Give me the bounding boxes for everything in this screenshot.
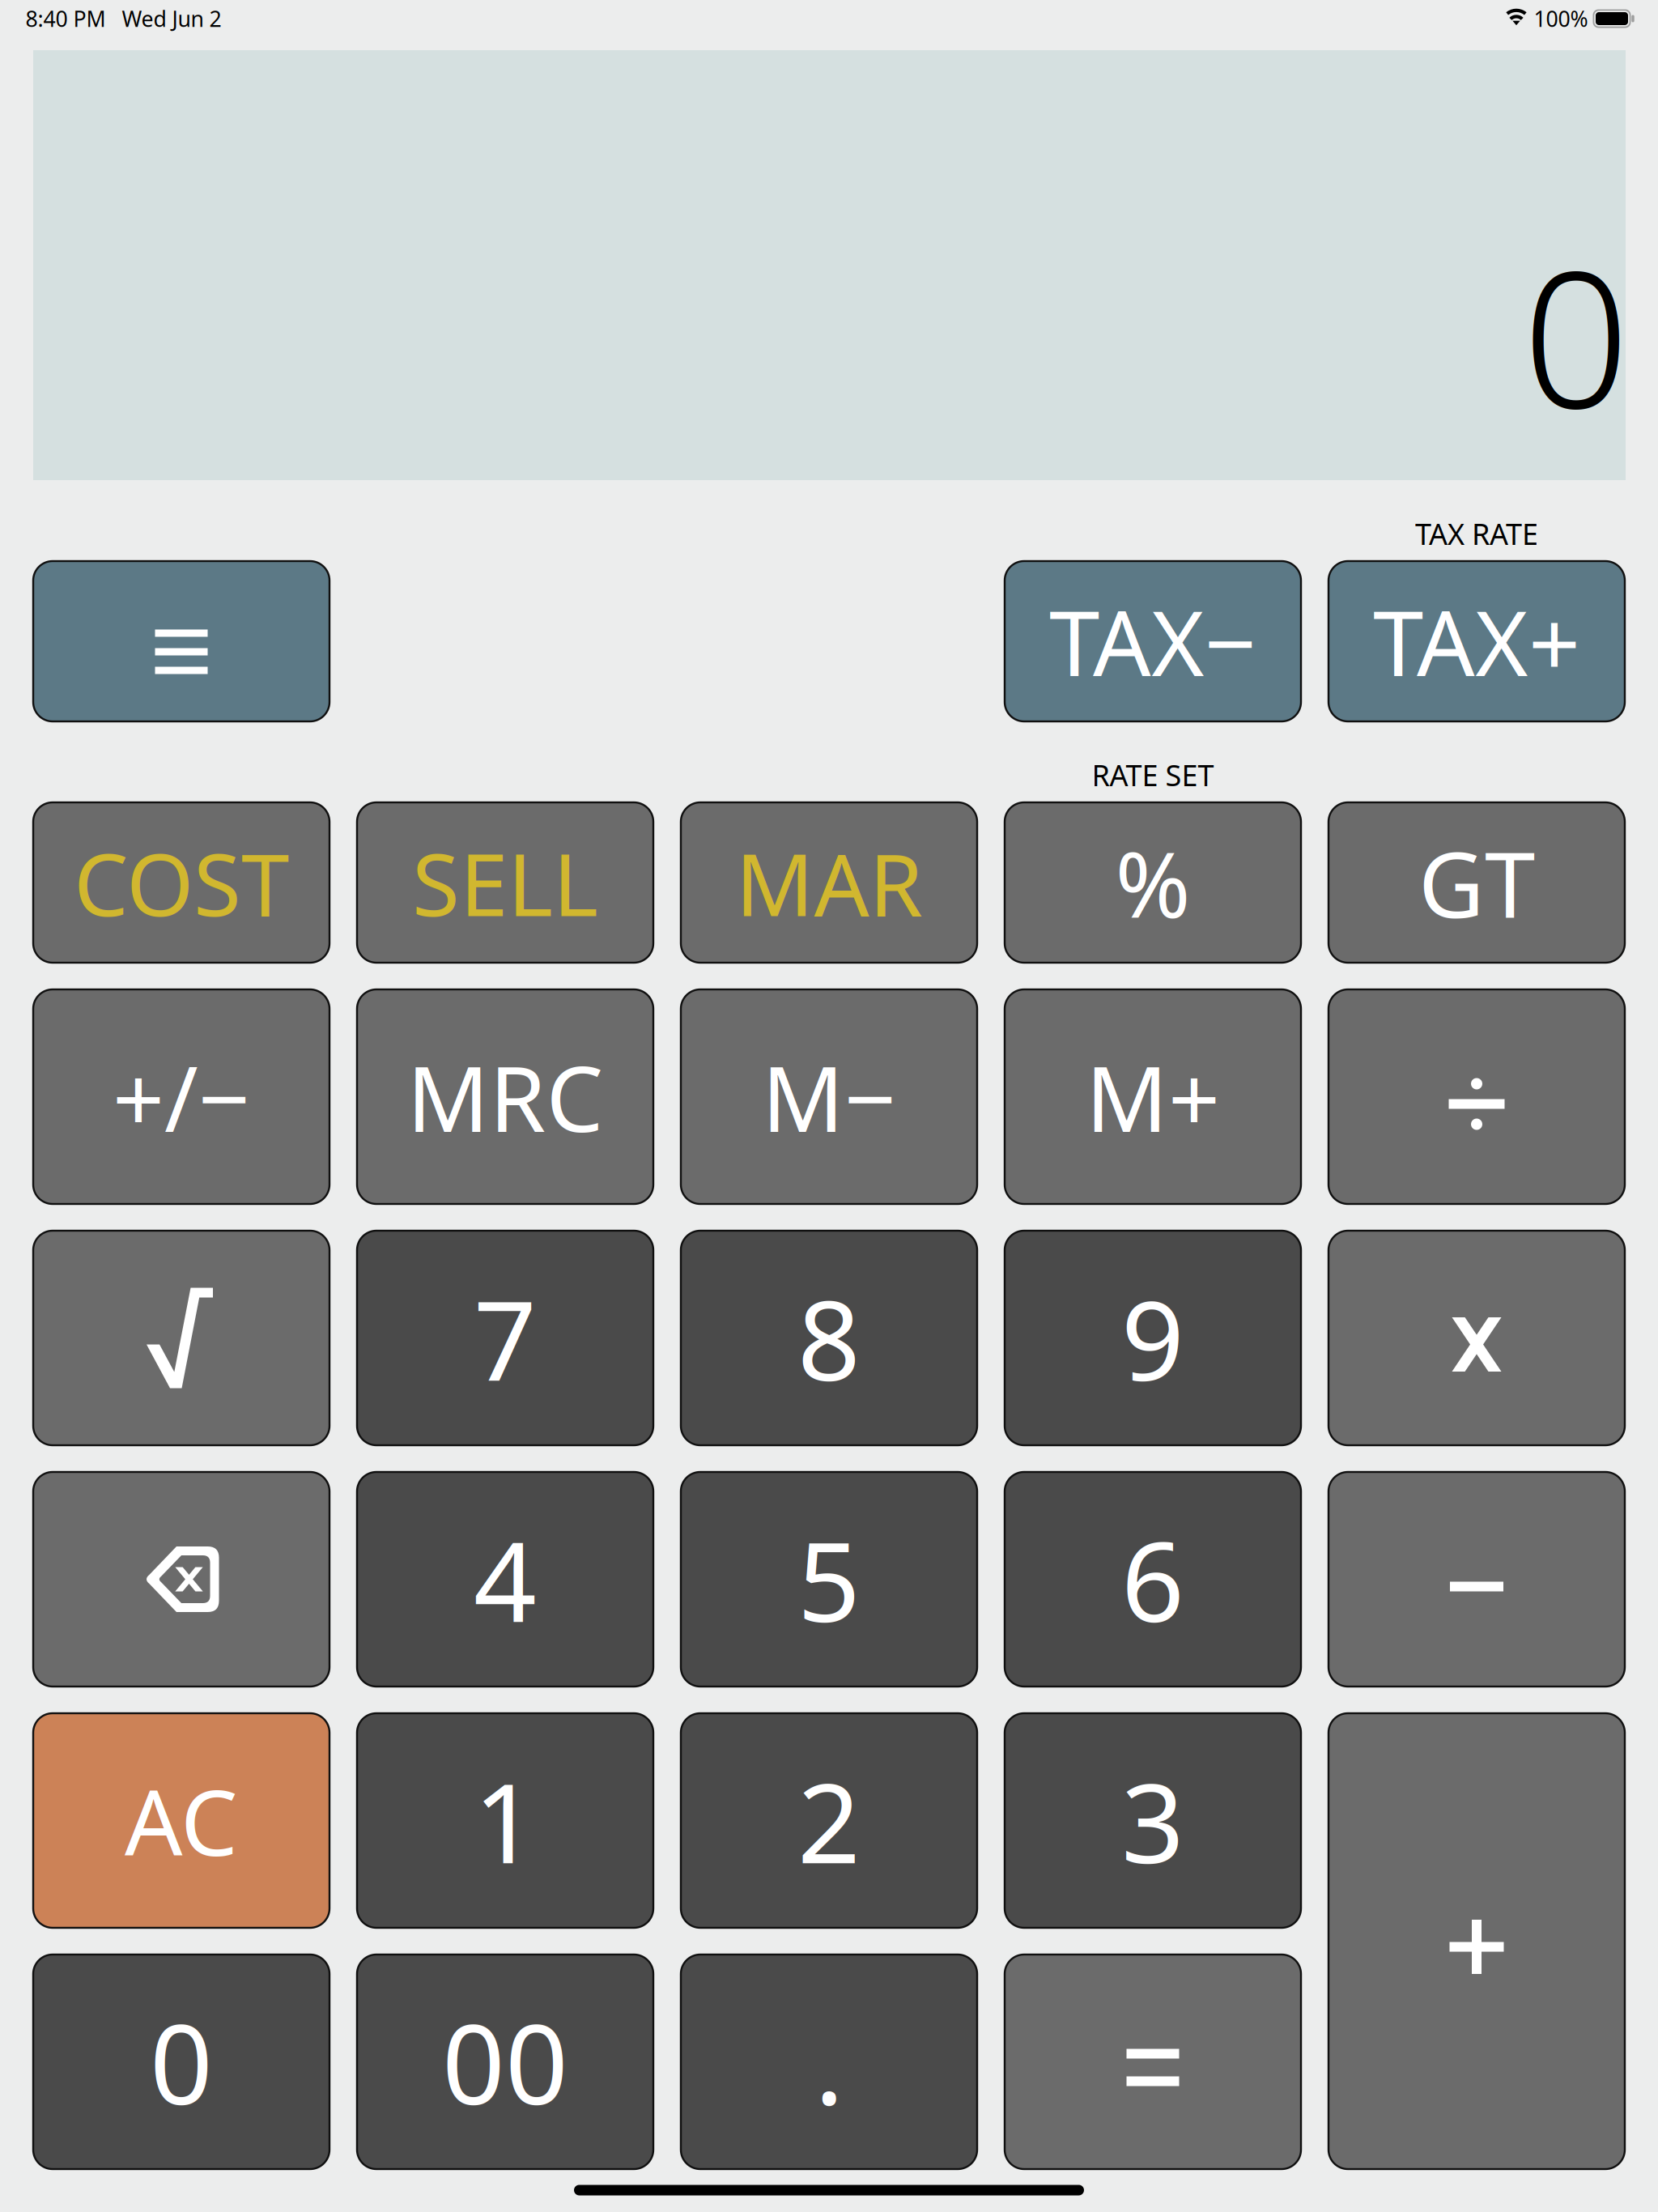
staticText: 2 <box>797 1747 861 1894</box>
staticText: M− <box>762 1036 896 1157</box>
button[interactable]: M− <box>681 989 977 1204</box>
button[interactable]: . <box>681 1955 977 2169</box>
button[interactable]: +/− <box>33 989 329 1204</box>
button[interactable]: COST <box>33 802 329 963</box>
staticText: MAR <box>735 825 923 940</box>
button[interactable]: 00 <box>357 1955 653 2169</box>
staticText: 100% <box>1534 4 1588 33</box>
button[interactable]: M+ <box>1005 989 1301 1204</box>
button[interactable]: Minus <box>1329 1472 1625 1687</box>
staticText: TAX+ <box>1373 581 1580 701</box>
button[interactable]: TAX+ <box>1329 561 1625 721</box>
button[interactable]: TAX− <box>1005 561 1301 721</box>
button[interactable]: Plus <box>1329 1713 1625 2169</box>
button[interactable]: Equals <box>1005 1955 1301 2169</box>
button[interactable]: 5 <box>681 1472 977 1687</box>
button[interactable]: 4 <box>357 1472 653 1687</box>
button[interactable]: 2 <box>681 1713 977 1928</box>
button[interactable]: 7 <box>357 1231 653 1445</box>
staticText: M+ <box>1086 1036 1220 1157</box>
button[interactable]: 0 <box>33 1955 329 2169</box>
button[interactable]: 1 <box>357 1713 653 1928</box>
button[interactable]: Menu <box>33 561 329 721</box>
button[interactable]: 3 <box>1005 1713 1301 1928</box>
button[interactable]: 9 <box>1005 1231 1301 1445</box>
button[interactable]: % <box>1005 802 1301 963</box>
button[interactable]: SELL <box>357 802 653 963</box>
staticText: 6 <box>1121 1506 1184 1652</box>
staticText: +/− <box>113 1036 250 1157</box>
staticText: AC <box>125 1760 238 1881</box>
button[interactable]: Divide <box>1329 989 1625 1204</box>
staticText: Wed Jun 2 <box>122 4 221 33</box>
staticText: % <box>1115 822 1190 943</box>
button[interactable]: GT <box>1329 802 1625 963</box>
staticText: RATE SET <box>1092 755 1214 794</box>
staticText: 4 <box>474 1506 537 1652</box>
button[interactable]: 6 <box>1005 1472 1301 1687</box>
staticText: . <box>814 1989 844 2135</box>
staticText: COST <box>74 825 289 940</box>
staticText: 00 <box>442 1989 568 2135</box>
button[interactable]: Delete <box>33 1472 329 1687</box>
staticText: 5 <box>797 1506 861 1652</box>
button[interactable]: 8 <box>681 1231 977 1445</box>
button[interactable]: AC <box>33 1713 329 1928</box>
staticText: MRC <box>407 1036 604 1157</box>
staticText: TAX− <box>1049 581 1256 701</box>
staticText: 8 <box>797 1265 861 1411</box>
staticText: 0 <box>150 1989 213 2135</box>
button[interactable]: MAR <box>681 802 977 963</box>
staticText: TAX RATE <box>1415 514 1538 553</box>
staticText: 1 <box>474 1747 537 1894</box>
button[interactable]: Square root <box>33 1231 329 1445</box>
staticText: 9 <box>1121 1265 1184 1411</box>
staticText: 7 <box>474 1265 537 1411</box>
staticText: SELL <box>412 825 598 940</box>
staticText: 8:40 PM <box>26 4 106 33</box>
staticText: 3 <box>1121 1747 1184 1894</box>
button[interactable]: MRC <box>357 989 653 1204</box>
staticText: GT <box>1418 822 1535 943</box>
button[interactable]: Multiply <box>1329 1231 1625 1445</box>
staticText: 0 <box>1522 211 1629 460</box>
